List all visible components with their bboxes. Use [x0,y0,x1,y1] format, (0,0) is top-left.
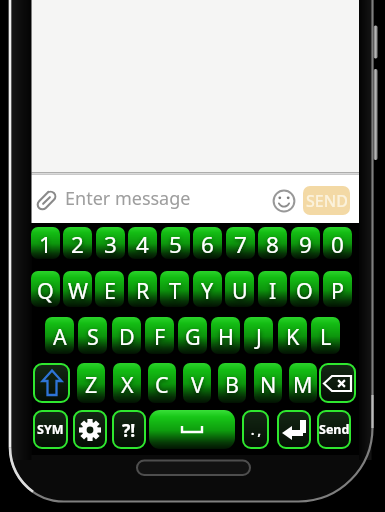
button[interactable]: F [145,317,174,354]
staticText: H [218,322,234,351]
button[interactable]: Send [317,410,351,449]
staticText: E [104,276,116,305]
button[interactable]: SYM [33,410,68,449]
staticText: G [185,322,201,351]
button[interactable]: SEND [303,186,350,215]
button[interactable]: 0 [323,227,352,259]
button[interactable] [33,363,70,403]
button[interactable]: K [278,317,307,354]
button[interactable]: 5 [161,227,190,259]
button[interactable]: Z [77,363,105,403]
button[interactable] [277,410,311,449]
staticText: 2 [71,229,84,260]
button[interactable]: D [112,317,141,354]
staticText: C [155,370,169,399]
staticText: 5 [169,229,182,260]
button[interactable] [73,410,107,449]
staticText: D [119,322,135,351]
button[interactable]: ?! [112,410,146,449]
staticText: B [225,370,239,399]
staticText: ?! [122,418,136,442]
staticText: 4 [136,229,149,260]
staticText: Y [201,276,214,305]
staticText: S [87,322,99,351]
staticText: 8 [266,229,279,260]
button[interactable]: L [311,317,340,354]
button[interactable]: 6 [193,227,222,259]
button[interactable]: 8 [258,227,287,259]
button[interactable]: U [225,271,254,307]
staticText: F [154,322,166,351]
staticText: 7 [234,229,247,260]
button[interactable]: A [45,317,74,354]
button[interactable]: 9 [291,227,320,259]
staticText: N [260,370,277,399]
button[interactable]: N [254,363,282,403]
button[interactable]: J [244,317,273,354]
button[interactable]: 1 [31,227,60,259]
staticText: Q [37,276,54,305]
button[interactable]: G [178,317,207,354]
staticText: X [121,370,134,399]
staticText: . , [251,422,261,438]
staticText: M [293,370,313,399]
staticText: 3 [104,229,117,260]
button[interactable]: P [323,271,352,307]
staticText: O [296,276,313,305]
staticText: SYM [37,421,64,438]
button[interactable] [319,363,356,403]
button[interactable]: M [289,363,317,403]
button[interactable]: 2 [63,227,92,259]
staticText: A [53,322,67,351]
staticText: W [68,276,88,305]
button[interactable]: 4 [128,227,157,259]
staticText: Z [85,370,98,399]
staticText: 9 [299,229,312,260]
staticText: J [256,322,262,351]
staticText: I [269,276,277,305]
staticText: K [286,322,300,351]
staticText: L [320,322,332,351]
staticText: SEND [306,190,348,212]
button[interactable]: I [258,271,287,307]
button[interactable]: O [290,271,319,307]
staticText: Send [319,421,350,438]
staticText: 0 [331,229,344,260]
staticText: T [169,276,181,305]
button[interactable]: Y [193,271,222,307]
button[interactable]: E [95,271,124,307]
button[interactable]: R [128,271,157,307]
staticText: V [191,370,204,399]
button[interactable]: Q [31,271,60,307]
staticText: P [331,276,345,305]
button[interactable]: T [160,271,189,307]
button[interactable]: C [148,363,176,403]
button[interactable]: 7 [226,227,255,259]
staticText: 6 [201,229,214,260]
button[interactable]: . , [242,410,269,449]
staticText: U [232,276,248,305]
staticText: R [136,276,150,305]
button[interactable]: B [218,363,246,403]
button[interactable]: S [78,317,107,354]
button[interactable]: X [113,363,141,403]
button[interactable]: W [63,271,92,307]
staticText: Enter message [65,186,191,211]
staticText: 1 [39,229,52,260]
button[interactable]: V [183,363,211,403]
button[interactable] [149,410,235,449]
button[interactable]: 3 [96,227,125,259]
button[interactable]: H [211,317,240,354]
